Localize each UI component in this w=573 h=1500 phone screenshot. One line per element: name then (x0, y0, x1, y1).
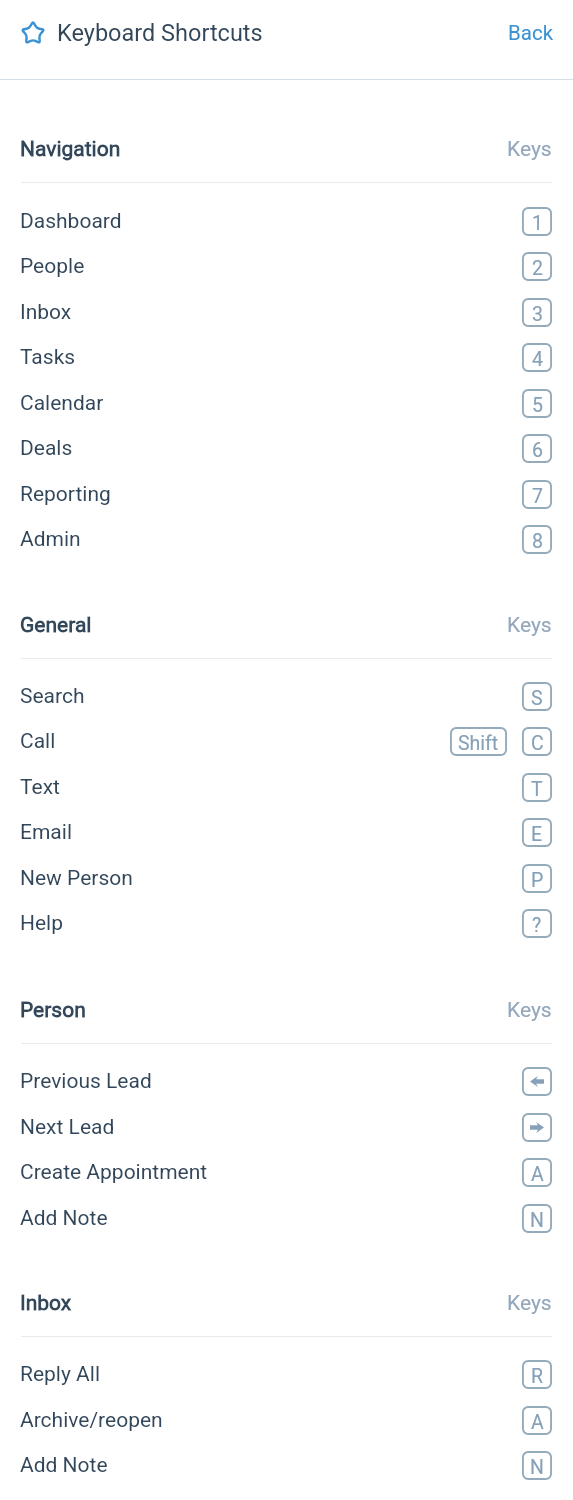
staticText: General (20, 613, 92, 638)
staticText: Next Lead (20, 1115, 115, 1140)
staticText: T (531, 778, 543, 801)
staticText: 4 (532, 348, 543, 371)
staticText: 7 (532, 485, 543, 508)
button[interactable]: Reporting (0, 471, 573, 517)
button[interactable]: Previous Lead (0, 1058, 573, 1104)
staticText: 1 (532, 212, 543, 235)
button[interactable]: Back (486, 9, 573, 57)
staticText: Reporting (20, 482, 111, 507)
staticText: 2 (532, 257, 543, 280)
staticText: C (531, 732, 544, 755)
button[interactable]: Create Appointment (0, 1149, 573, 1195)
staticText: Help (20, 911, 64, 936)
button[interactable]: New Person (0, 855, 573, 901)
button[interactable]: Add Note (0, 1442, 573, 1488)
staticText: New Person (20, 866, 133, 891)
staticText: Email (20, 820, 72, 845)
staticText: ? (532, 914, 542, 937)
other: Left arrow key (522, 1067, 552, 1096)
button[interactable]: People (0, 243, 573, 289)
staticText: 6 (532, 439, 543, 462)
button[interactable]: Next Lead (0, 1104, 573, 1150)
staticText: N (530, 1456, 544, 1479)
staticText: Deals (20, 436, 73, 461)
button[interactable]: Call (0, 718, 573, 764)
button[interactable]: Archive/reopen (0, 1397, 573, 1443)
staticText: Keyboard Shortcuts (57, 19, 263, 47)
other: Right arrow key (522, 1113, 552, 1142)
button[interactable]: Deals (0, 425, 573, 471)
staticText: Back (508, 21, 554, 45)
staticText: Inbox (20, 300, 72, 325)
staticText: Search (20, 684, 85, 709)
staticText: Archive/reopen (20, 1408, 163, 1433)
staticText: P (531, 869, 544, 892)
button[interactable]: Calendar (0, 380, 573, 426)
staticText: Keys (507, 613, 552, 638)
staticText: Keys (507, 1291, 552, 1316)
button[interactable]: Favorite (20, 20, 46, 46)
staticText: E (531, 823, 543, 846)
button[interactable]: Text (0, 764, 573, 810)
staticText: Dashboard (20, 209, 122, 234)
staticText: Keys (507, 137, 552, 162)
button[interactable]: Admin (0, 516, 573, 562)
staticText: People (20, 254, 85, 279)
button[interactable]: Email (0, 809, 573, 855)
staticText: Add Note (20, 1453, 108, 1478)
staticText: R (531, 1365, 544, 1388)
staticText: Shift (458, 732, 499, 755)
staticText: Text (20, 775, 60, 800)
staticText: Calendar (20, 391, 104, 416)
staticText: Create Appointment (20, 1160, 208, 1185)
staticText: A (531, 1411, 544, 1434)
staticText: N (530, 1209, 544, 1232)
staticText: Previous Lead (20, 1069, 152, 1094)
staticText: Navigation (20, 137, 121, 162)
button[interactable]: Inbox (0, 289, 573, 335)
staticText: Inbox (20, 1291, 72, 1316)
staticText: Tasks (20, 345, 76, 370)
button[interactable]: Reply All (0, 1351, 573, 1397)
staticText: Person (20, 998, 86, 1023)
button[interactable]: Dashboard (0, 198, 573, 244)
staticText: Add Note (20, 1206, 108, 1231)
button[interactable]: Add Note (0, 1195, 573, 1241)
staticText: 3 (532, 303, 543, 326)
button[interactable]: Tasks (0, 334, 573, 380)
staticText: 5 (532, 394, 543, 417)
staticText: S (531, 687, 543, 710)
staticText: Reply All (20, 1362, 101, 1387)
staticText: Admin (20, 527, 81, 552)
staticText: Call (20, 729, 56, 754)
staticText: A (531, 1163, 544, 1186)
staticText: Keys (507, 998, 552, 1023)
button[interactable]: Search (0, 673, 573, 719)
button[interactable]: Help (0, 900, 573, 946)
staticText: 8 (532, 530, 543, 553)
